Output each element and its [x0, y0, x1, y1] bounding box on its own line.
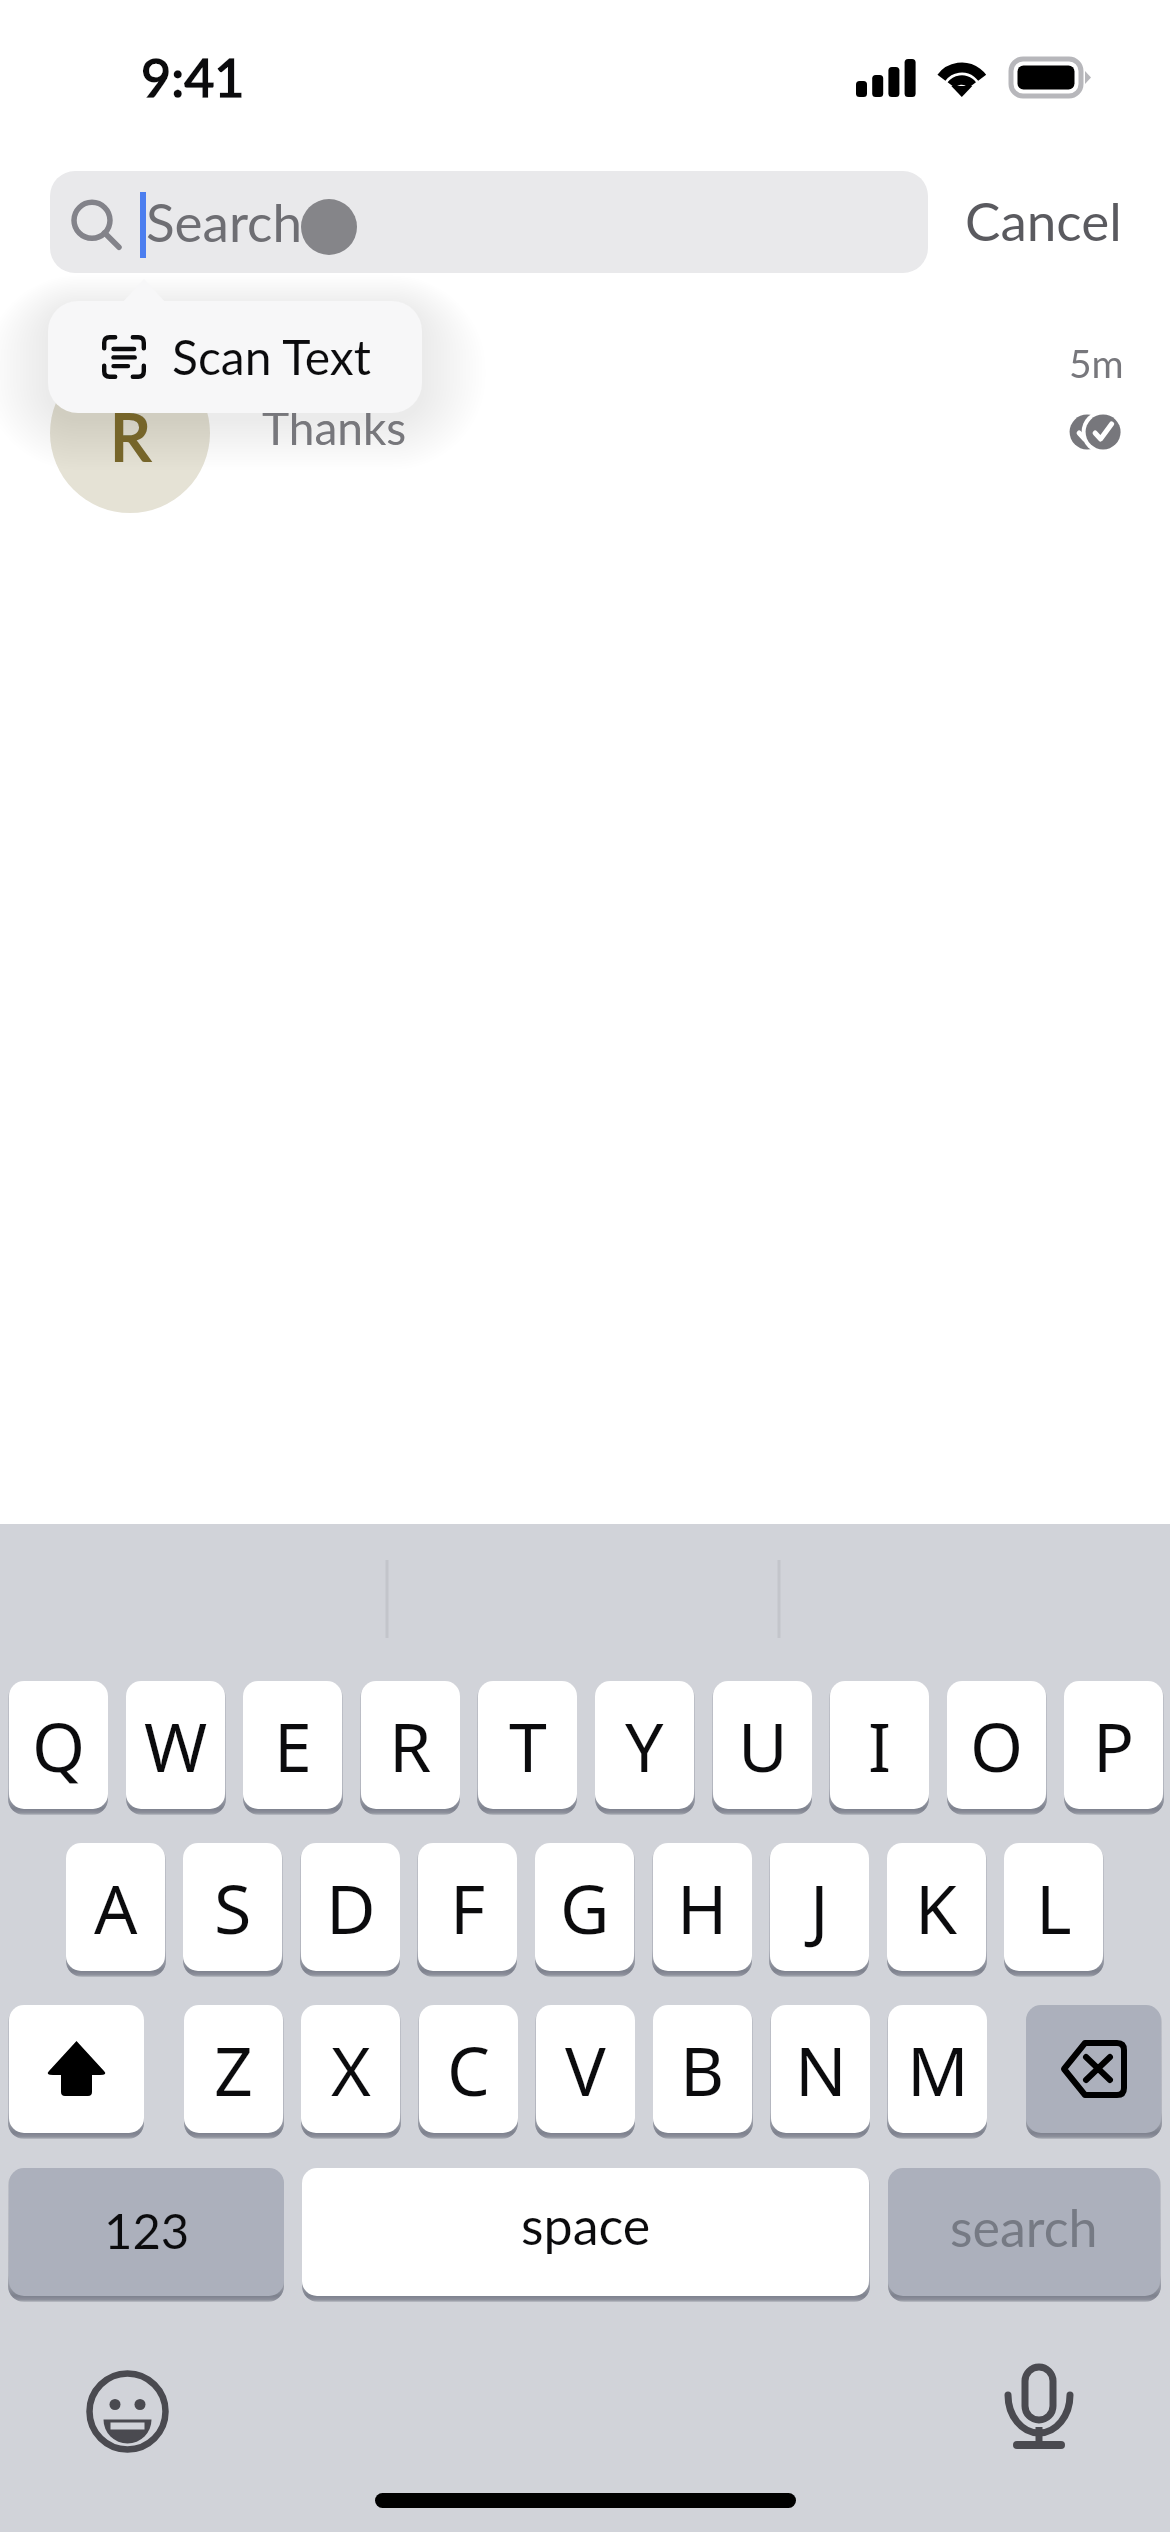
button[interactable]: C — [419, 2005, 518, 2133]
staticText: B — [680, 2023, 725, 2116]
button[interactable]: N — [771, 2005, 870, 2133]
staticText: L — [1036, 1861, 1072, 1954]
staticText: H — [677, 1861, 728, 1954]
button[interactable]: Y — [595, 1681, 694, 1809]
button[interactable]: Z — [184, 2005, 283, 2133]
button[interactable]: search — [888, 2168, 1160, 2296]
button[interactable]: A — [66, 1843, 165, 1971]
staticText: Scan Text — [172, 328, 371, 386]
button[interactable]: X — [301, 2005, 400, 2133]
button[interactable]: Delete — [1026, 2005, 1161, 2133]
staticText: search — [950, 2196, 1098, 2258]
button[interactable]: R — [50, 353, 210, 513]
staticText: G — [560, 1861, 610, 1954]
staticText: T — [509, 1699, 547, 1792]
staticText: P — [1093, 1699, 1135, 1792]
button[interactable]: I — [830, 1681, 929, 1809]
staticText: I — [868, 1699, 892, 1792]
button[interactable]: Search — [50, 171, 928, 273]
button[interactable]: J — [770, 1843, 869, 1971]
staticText: J — [810, 1861, 829, 1954]
button[interactable]: O — [947, 1681, 1046, 1809]
staticText: W — [144, 1699, 208, 1792]
staticText: Thanks — [262, 400, 407, 455]
button[interactable]: U — [713, 1681, 812, 1809]
staticText: Q — [32, 1699, 86, 1792]
staticText: R — [389, 1699, 432, 1792]
button[interactable]: Q — [9, 1681, 108, 1809]
staticText: Z — [214, 2023, 253, 2116]
staticText: Search — [146, 190, 303, 254]
staticText: A — [94, 1861, 138, 1954]
staticText: Cancel — [965, 189, 1122, 253]
staticText: V — [565, 2023, 606, 2116]
button[interactable]: K — [887, 1843, 986, 1971]
button[interactable]: W — [126, 1681, 225, 1809]
staticText: 5m — [1069, 340, 1124, 387]
button[interactable]: S — [183, 1843, 282, 1971]
staticText: K — [915, 1861, 958, 1954]
staticText: D — [326, 1861, 376, 1954]
button[interactable]: Scan Text — [48, 301, 422, 413]
staticText: M — [907, 2023, 969, 2116]
button[interactable]: T — [478, 1681, 577, 1809]
button[interactable]: D — [301, 1843, 400, 1971]
staticText: R — [110, 397, 151, 475]
button[interactable]: M — [888, 2005, 987, 2133]
button[interactable]: P — [1064, 1681, 1163, 1809]
staticText: Y — [625, 1699, 664, 1792]
staticText: C — [447, 2023, 490, 2116]
button[interactable]: Emoji keyboard — [82, 2366, 174, 2458]
button[interactable]: space — [302, 2168, 869, 2296]
button[interactable]: 123 — [9, 2168, 284, 2296]
button[interactable]: L — [1004, 1843, 1103, 1971]
staticText: U — [738, 1699, 788, 1792]
button[interactable]: G — [535, 1843, 634, 1971]
staticText: O — [970, 1699, 1024, 1792]
button[interactable]: H — [653, 1843, 752, 1971]
button[interactable]: E — [243, 1681, 342, 1809]
staticText: 9:41 — [141, 46, 245, 108]
button[interactable]: R — [361, 1681, 460, 1809]
staticText: 123 — [104, 2201, 190, 2260]
staticText: X — [331, 2023, 371, 2116]
staticText: N — [795, 2023, 847, 2116]
button[interactable]: Shift — [9, 2005, 144, 2133]
staticText: S — [214, 1861, 252, 1954]
button[interactable]: Cancel — [950, 175, 1137, 267]
button[interactable]: F — [418, 1843, 517, 1971]
button[interactable]: Dictation — [993, 2357, 1085, 2457]
staticText: space — [521, 2194, 651, 2256]
staticText: E — [274, 1699, 312, 1792]
button[interactable]: B — [653, 2005, 752, 2133]
button[interactable]: V — [536, 2005, 635, 2133]
staticText: F — [450, 1861, 486, 1954]
